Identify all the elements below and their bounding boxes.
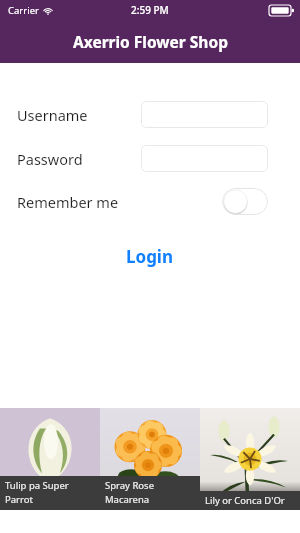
button[interactable] [141,145,268,172]
staticText: Macarena [105,493,150,506]
button[interactable]: Remember me toggle, off [222,188,268,215]
staticText: Carrier [8,4,39,17]
staticText: Login [126,245,174,268]
button[interactable]: Spray Rose [100,408,200,510]
button[interactable]: Lily or Conca D'Or [200,408,300,510]
staticText: Parrot [5,493,33,506]
staticText: Username [17,105,88,125]
staticText: Remember me [17,192,119,212]
button[interactable]: Tulip pa Super [0,408,100,510]
staticText: 2:59 PM [131,3,169,17]
staticText: Tulip pa Super [5,479,69,492]
staticText: Lily or Conca D'Or [205,494,285,507]
staticText: Spray Rose [105,479,155,492]
button[interactable] [141,101,268,128]
staticText: Password [17,149,83,169]
staticText: Axerrio Flower Shop [73,31,228,52]
button[interactable]: Login [0,241,300,271]
